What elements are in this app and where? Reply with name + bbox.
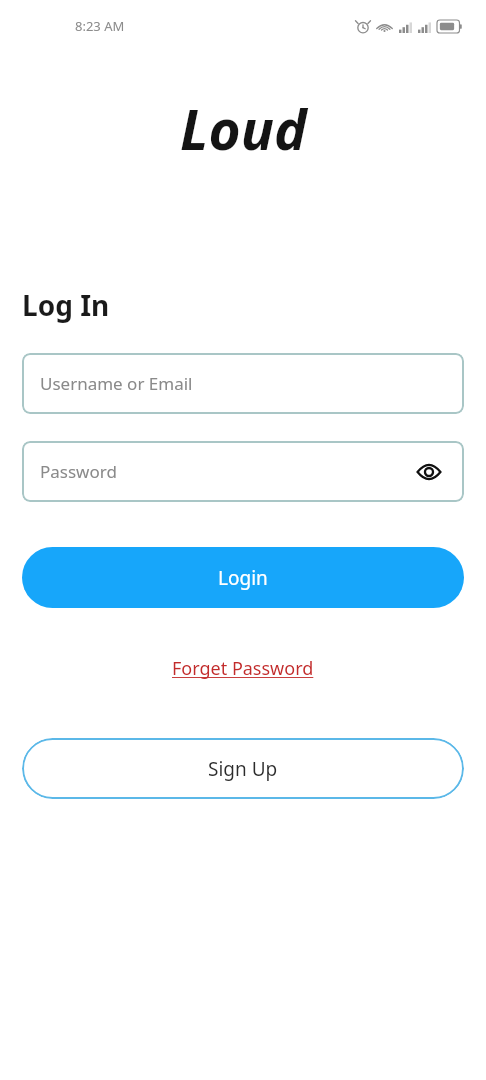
- staticText: Sign Up: [208, 756, 278, 782]
- staticText: Log In: [22, 286, 110, 324]
- staticText: Forget Password: [172, 656, 314, 681]
- staticText: Loud: [180, 91, 307, 166]
- button[interactable]: Login: [22, 547, 464, 608]
- button[interactable]: Sign Up: [22, 738, 464, 799]
- staticText: Login: [218, 565, 268, 591]
- staticText: Username or Email: [40, 372, 193, 395]
- button[interactable]: Username or Email: [22, 353, 464, 414]
- staticText: Password: [40, 460, 117, 483]
- button[interactable]: Forget Password: [166, 652, 320, 685]
- button[interactable]: Password: [22, 441, 464, 502]
- staticText: 8:23 AM: [75, 17, 125, 35]
- button[interactable]: Show password: [414, 457, 444, 487]
